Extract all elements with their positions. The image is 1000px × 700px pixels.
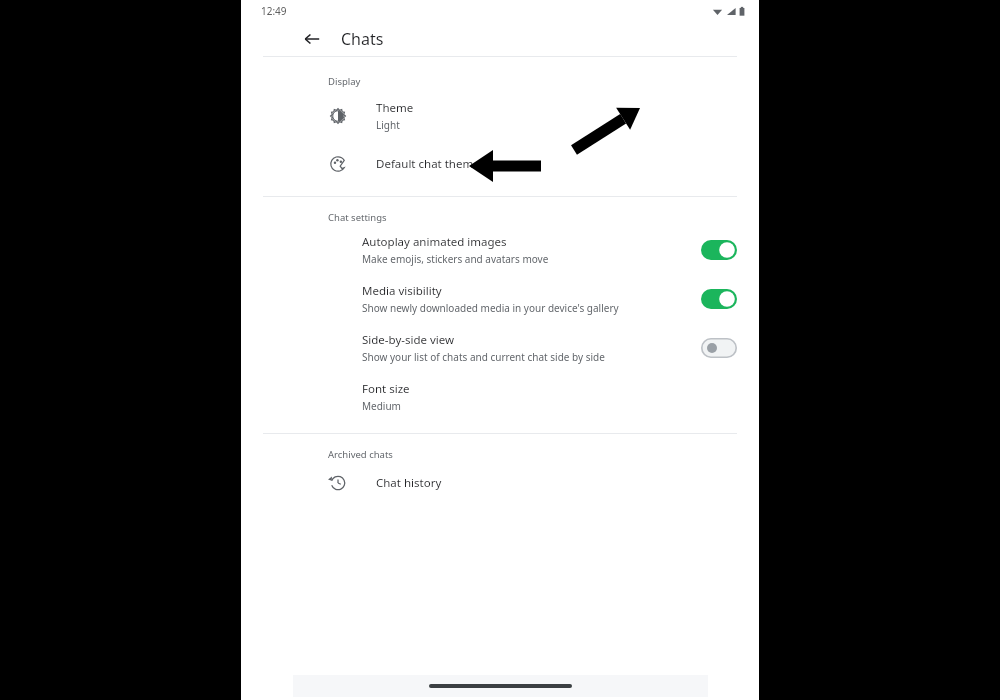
button[interactable]: Autoplay animated images <box>241 230 759 270</box>
staticText: Default chat theme <box>376 156 480 172</box>
staticText: Autoplay animated images <box>362 234 507 250</box>
staticText: Show your list of chats and current chat… <box>362 350 605 364</box>
staticText: Make emojis, stickers and avatars move <box>362 252 549 266</box>
button[interactable]: Font size <box>241 377 759 417</box>
button[interactable]: Side-by-side view <box>241 328 759 368</box>
staticText: Display <box>328 75 361 88</box>
button[interactable]: Theme <box>241 94 759 138</box>
button[interactable]: Back <box>299 26 325 52</box>
button[interactable]: Chat history <box>241 467 759 499</box>
staticText: Medium <box>362 399 401 413</box>
staticText: Chat settings <box>328 211 387 224</box>
staticText: Show newly downloaded media in your devi… <box>362 301 619 315</box>
button[interactable]: On <box>701 240 737 260</box>
staticText: Side-by-side view <box>362 332 455 348</box>
staticText: 12:49 <box>261 4 287 18</box>
staticText: Font size <box>362 381 410 397</box>
staticText: Chat history <box>376 475 442 491</box>
staticText: Theme <box>376 100 414 116</box>
button[interactable]: Default chat theme <box>241 148 759 180</box>
button[interactable]: Media visibility <box>241 279 759 319</box>
staticText: Media visibility <box>362 283 442 299</box>
staticText: Chats <box>341 28 384 50</box>
button[interactable]: Off <box>701 338 737 358</box>
button[interactable]: On <box>701 289 737 309</box>
staticText: Light <box>376 118 400 132</box>
staticText: Archived chats <box>328 448 393 461</box>
